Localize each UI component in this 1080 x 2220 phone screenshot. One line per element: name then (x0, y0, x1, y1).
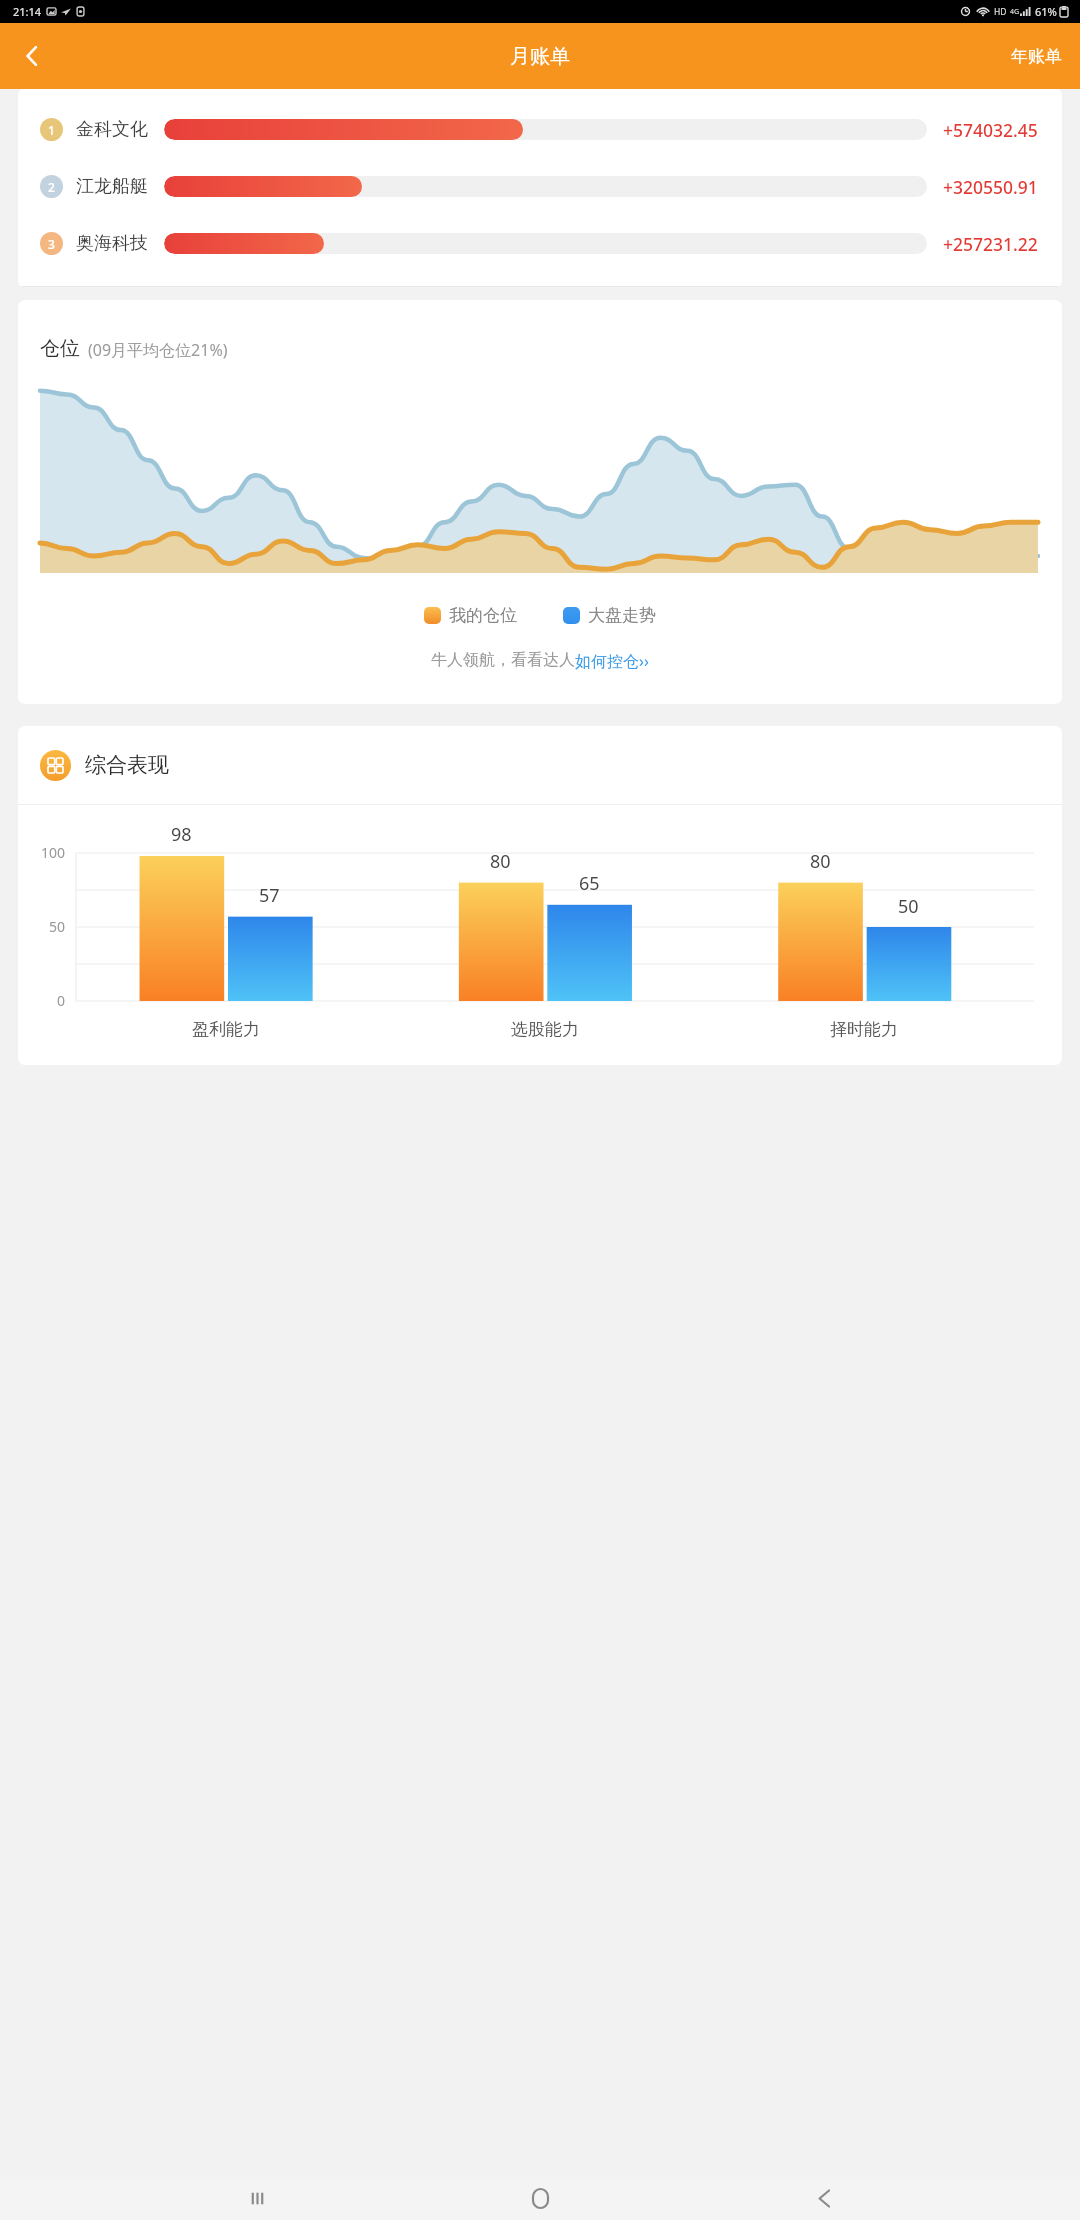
staticText: (09月平均仓位21%) (88, 339, 228, 361)
staticText: 2 (48, 179, 55, 195)
staticText: 牛人领航，看看达人 (431, 650, 575, 670)
button[interactable]: 牛人领航，看看达人 (18, 650, 1062, 672)
staticText: HD (994, 6, 1007, 18)
staticText: 57 (259, 883, 280, 908)
button[interactable]: Back (0, 23, 64, 89)
staticText: 50 (898, 894, 919, 919)
staticText: 3 (48, 236, 55, 252)
button[interactable]: Back (797, 2177, 851, 2220)
button[interactable]: 年账单 (993, 23, 1080, 89)
button[interactable]: Home (513, 2177, 567, 2220)
staticText: 择时能力 (830, 1019, 898, 1040)
button[interactable]: 1 (18, 101, 1062, 158)
staticText: 选股能力 (511, 1019, 579, 1040)
staticText: 江龙船艇 (76, 175, 148, 198)
staticText: +574032.45 (943, 118, 1038, 142)
staticText: 21:14 (13, 4, 42, 19)
staticText: 98 (171, 822, 192, 847)
staticText: 盈利能力 (192, 1019, 260, 1040)
staticText: +320550.91 (943, 175, 1038, 199)
staticText: 50 (49, 917, 66, 936)
staticText: 我的仓位 (449, 605, 517, 626)
staticText: 65 (579, 871, 600, 896)
staticText: 80 (810, 849, 831, 874)
staticText: 80 (490, 849, 511, 874)
staticText: 100 (41, 843, 66, 862)
button[interactable]: 3 (18, 215, 1062, 272)
staticText: 如何控仓›› (575, 650, 649, 672)
staticText: 奥海科技 (76, 232, 148, 255)
staticText: 1 (48, 122, 55, 138)
staticText: 年账单 (1011, 46, 1062, 67)
staticText: 月账单 (510, 44, 570, 69)
button[interactable]: 2 (18, 158, 1062, 215)
button[interactable]: Recents (230, 2177, 284, 2220)
staticText: 仓位 (40, 336, 80, 361)
staticText: 大盘走势 (588, 605, 656, 626)
staticText: 61% (1035, 4, 1057, 19)
staticText: 综合表现 (85, 752, 169, 778)
staticText: 金科文化 (76, 118, 148, 141)
staticText: 0 (57, 991, 66, 1010)
staticText: 4G (1010, 7, 1020, 17)
staticText: +257231.22 (943, 232, 1038, 256)
